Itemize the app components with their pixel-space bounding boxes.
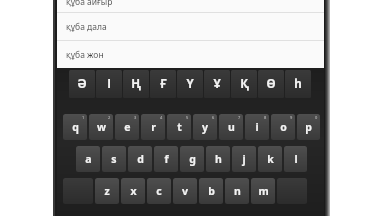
staticText: c [156,184,162,198]
button[interactable]: Ө [258,70,284,98]
staticText: z [104,184,110,198]
staticText: d [137,152,144,166]
staticText: h [215,152,222,166]
button[interactable]: s [102,146,126,172]
staticText: p [305,120,312,134]
button[interactable]: t [167,114,191,140]
button[interactable]: y [193,114,217,140]
staticText: құба айғыр [66,0,113,8]
button[interactable]: j [232,146,256,172]
staticText: Ғ [160,76,167,92]
staticText: 6 [212,115,215,120]
button[interactable]: p [297,114,320,140]
button[interactable]: b [199,178,223,204]
staticText: 5 [186,115,189,120]
staticText: b [208,184,215,198]
button[interactable]: x [121,178,145,204]
staticText: 7 [238,115,241,120]
staticText: v [182,184,188,198]
staticText: l [294,152,298,166]
staticText: n [234,184,241,198]
staticText: k [267,152,274,166]
staticText: e [124,120,131,134]
staticText: құба жон [66,49,104,61]
staticText: 4 [160,115,163,120]
button[interactable]: k [258,146,282,172]
staticText: Ә [77,76,87,92]
button[interactable]: Ғ [150,70,176,98]
staticText: Ұ [213,76,221,92]
staticText: i [255,120,259,134]
staticText: һ [294,76,302,92]
button[interactable]: құба айғыр [57,0,324,12]
button[interactable]: Ү [177,70,203,98]
staticText: І [107,76,111,92]
staticText: s [111,152,117,166]
button[interactable]: m [251,178,275,204]
staticText: 3 [134,115,137,120]
staticText: Ң [131,76,141,92]
staticText: w [97,120,106,134]
button[interactable]: l [284,146,307,172]
button[interactable]: z [95,178,119,204]
button[interactable]: Backspace [277,178,307,204]
button[interactable]: w [89,114,113,140]
staticText: 0 [315,115,318,120]
button[interactable]: c [147,178,171,204]
staticText: a [85,152,92,166]
button[interactable]: g [180,146,204,172]
staticText: f [164,152,169,166]
staticText: 9 [290,115,293,120]
button[interactable]: һ [285,70,311,98]
button[interactable]: e [115,114,139,140]
button[interactable]: u [219,114,243,140]
button[interactable]: Ұ [204,70,230,98]
button[interactable]: v [173,178,197,204]
staticText: j [242,152,246,166]
button[interactable]: r [141,114,165,140]
staticText: r [151,120,156,134]
staticText: құба дала [66,21,107,33]
button[interactable]: f [154,146,178,172]
staticText: o [280,120,287,134]
staticText: g [189,152,196,166]
staticText: Қ [240,76,249,92]
staticText: t [177,120,182,134]
staticText: u [228,120,235,134]
staticText: 8 [264,115,267,120]
button[interactable]: құба жон [57,40,324,68]
button[interactable]: І [96,70,122,98]
button[interactable]: Қ [231,70,257,98]
staticText: 1 [82,115,85,120]
button[interactable]: q [63,114,87,140]
staticText: q [72,120,79,134]
button[interactable]: Ә [69,70,95,98]
button[interactable]: d [128,146,152,172]
button[interactable]: Ң [123,70,149,98]
staticText: m [258,184,269,198]
button[interactable]: Shift [63,178,93,204]
staticText: 2 [108,115,111,120]
staticText: y [202,120,208,134]
button[interactable]: a [76,146,100,172]
button[interactable]: n [225,178,249,204]
button[interactable]: h [206,146,230,172]
staticText: Ө [266,76,276,92]
button[interactable]: i [245,114,269,140]
button[interactable]: o [271,114,295,140]
staticText: Ү [186,76,194,92]
button[interactable]: құба дала [57,12,324,40]
staticText: x [130,184,137,198]
